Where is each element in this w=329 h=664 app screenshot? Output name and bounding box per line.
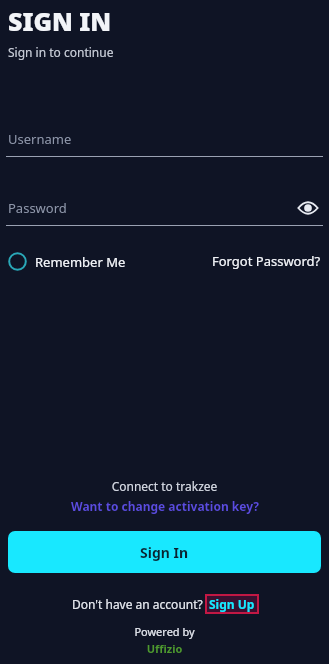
button[interactable]: Forgot Password? xyxy=(212,252,321,270)
staticText: Forgot Password? xyxy=(212,252,321,270)
staticText: Sign in to continue xyxy=(8,44,114,60)
staticText: Want to change activation key? xyxy=(71,498,259,514)
button[interactable]: Show password xyxy=(293,193,323,223)
staticText: Connect to trakzee xyxy=(0,478,329,494)
staticText: Uffizio xyxy=(0,641,329,656)
button[interactable]: Remember Me xyxy=(8,252,126,271)
button[interactable]: Sign Up xyxy=(206,595,258,613)
staticText: Remember Me xyxy=(35,253,126,271)
staticText: Don't have an account? xyxy=(72,596,203,612)
staticText: Powered by xyxy=(0,624,329,639)
staticText: SIGN IN xyxy=(8,4,112,38)
staticText: Sign In xyxy=(140,543,189,562)
button[interactable]: Password xyxy=(6,191,323,225)
staticText: Password xyxy=(8,199,67,217)
button[interactable]: Username xyxy=(6,122,323,156)
button[interactable]: Sign In xyxy=(8,531,321,573)
staticText: Username xyxy=(8,130,72,148)
button[interactable]: Want to change activation key? xyxy=(0,498,329,514)
staticText: Sign Up xyxy=(209,596,255,612)
